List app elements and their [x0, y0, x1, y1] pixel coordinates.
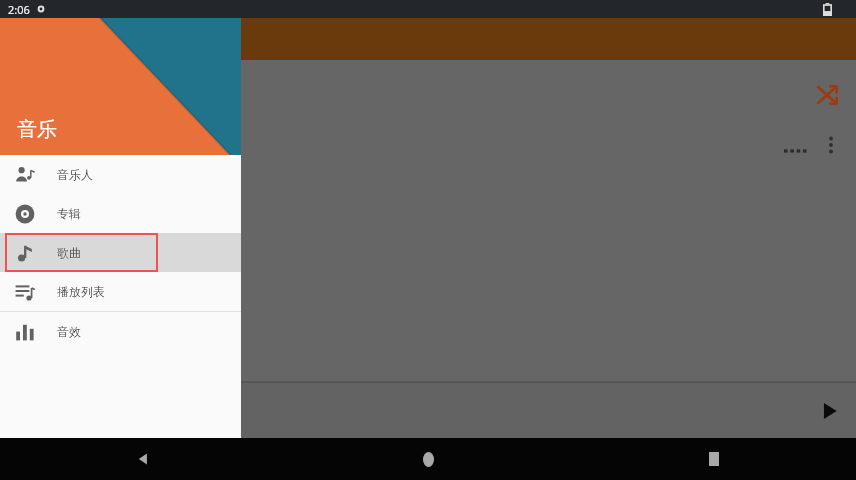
button[interactable]: 音效: [0, 312, 241, 351]
button[interactable]: More options: [818, 132, 844, 158]
button[interactable]: Home: [286, 438, 571, 480]
button[interactable]: Play: [816, 397, 844, 425]
staticText: 音乐: [17, 117, 57, 142]
button[interactable]: 歌曲: [0, 233, 241, 272]
button[interactable]: Play: [241, 383, 856, 438]
button[interactable]: Back: [0, 438, 286, 480]
button[interactable]: 音乐人: [0, 155, 241, 194]
button[interactable]: 播放列表: [0, 272, 241, 311]
staticText: 音乐人: [57, 167, 93, 182]
staticText: 2:06: [8, 2, 30, 17]
staticText: 播放列表: [57, 284, 105, 299]
button[interactable]: Shuffle: [812, 80, 842, 110]
button[interactable]: 专辑: [0, 194, 241, 233]
button[interactable]: 音乐: [0, 18, 241, 155]
staticText: 歌曲: [57, 245, 81, 260]
staticText: 专辑: [57, 206, 81, 221]
staticText: 音效: [57, 324, 81, 339]
button[interactable]: Recents: [571, 438, 856, 480]
